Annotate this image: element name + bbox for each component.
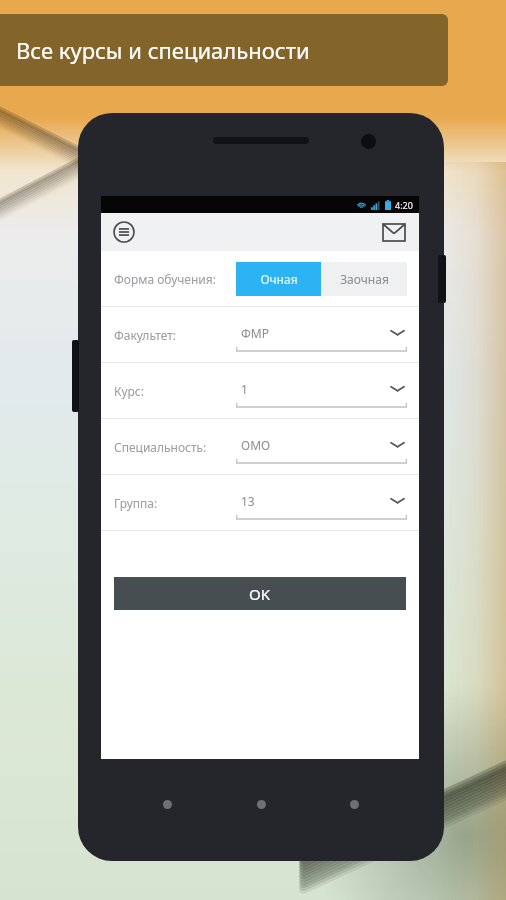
button[interactable]: Группа: — [101, 475, 419, 530]
button[interactable]: Курс: — [101, 363, 419, 418]
staticText: 4:20 — [395, 199, 413, 211]
staticText: Курс: — [114, 383, 236, 399]
staticText: 13 — [241, 493, 255, 509]
staticText: 1 — [241, 381, 248, 397]
staticText: OK — [249, 584, 271, 604]
staticText: Специальность: — [114, 439, 236, 455]
button[interactable]: Menu — [109, 217, 139, 247]
button[interactable]: ФМР — [236, 318, 407, 352]
button[interactable]: OK — [114, 577, 406, 610]
staticText: ФМР — [241, 325, 269, 341]
staticText: Группа: — [114, 495, 236, 511]
button[interactable]: Заочная — [321, 262, 407, 296]
button[interactable]: 13 — [236, 486, 407, 520]
button[interactable]: ОМО — [236, 430, 407, 464]
staticText: Заочная — [340, 271, 389, 287]
button[interactable]: Специальность: — [101, 419, 419, 474]
button[interactable]: Форма обучения: — [101, 251, 419, 306]
staticText: Факультет: — [114, 327, 236, 343]
button[interactable]: Очная — [236, 262, 321, 296]
staticText: Очная — [260, 271, 298, 287]
staticText: ОМО — [241, 437, 271, 453]
button[interactable]: 1 — [236, 374, 407, 408]
staticText: Все курсы и специальности — [16, 35, 310, 65]
button[interactable]: Messages — [379, 217, 409, 247]
staticText: Форма обучения: — [114, 271, 236, 287]
button[interactable]: Факультет: — [101, 307, 419, 362]
